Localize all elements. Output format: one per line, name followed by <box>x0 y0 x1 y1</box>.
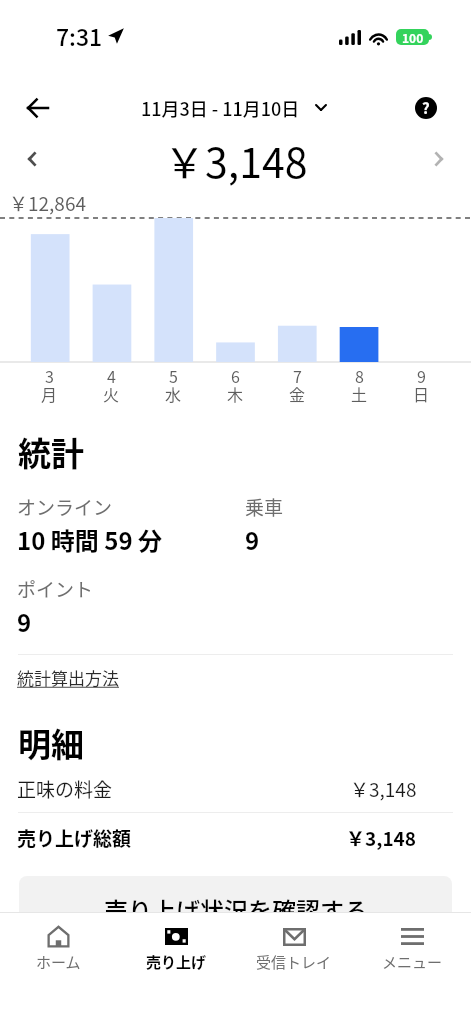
button[interactable]: Next week <box>419 139 459 179</box>
staticText: 7 <box>293 364 302 387</box>
staticText: 火 <box>103 382 120 405</box>
button[interactable]: Previous week <box>12 139 52 179</box>
staticText: ￥12,864 <box>9 189 87 217</box>
staticText: 9 <box>17 604 32 639</box>
staticText: 7:31 <box>56 19 103 52</box>
staticText: オンライン <box>17 493 113 521</box>
button[interactable]: 売り上げ状況を確認する <box>19 876 452 912</box>
staticText: 金 <box>289 382 306 405</box>
staticText: 月 <box>41 382 58 405</box>
staticText: 正味の料金 <box>17 775 113 803</box>
staticText: 統計 <box>18 428 84 476</box>
button[interactable]: メニュー <box>353 913 471 971</box>
staticText: ￥3,148 <box>346 824 417 852</box>
staticText: 乗車 <box>245 493 284 521</box>
staticText: 9 <box>245 522 260 557</box>
staticText: ￥3,148 <box>350 775 417 803</box>
staticText: ホーム <box>36 951 81 971</box>
button[interactable]: ホーム <box>0 913 117 971</box>
staticText: 受信トレイ <box>256 951 332 971</box>
staticText: 8 <box>355 364 364 387</box>
staticText: ポイント <box>17 575 94 603</box>
staticText: ￥3,148 <box>164 130 308 186</box>
button[interactable]: Back <box>14 85 60 131</box>
staticText: 日 <box>413 382 430 405</box>
staticText: 4 <box>107 364 116 387</box>
button[interactable]: 売り上げ <box>117 913 235 971</box>
staticText: 3 <box>45 364 54 387</box>
button[interactable]: 統計算出方法 <box>17 665 119 690</box>
button[interactable]: 11月3日 - 11月10日 <box>135 89 333 127</box>
staticText: 9 <box>417 364 426 387</box>
staticText: ? <box>422 97 430 119</box>
staticText: 5 <box>169 364 178 387</box>
staticText: 売り上げ総額 <box>17 824 132 852</box>
button[interactable]: Help <box>404 86 448 130</box>
staticText: 売り上げ状況を確認する <box>104 892 368 912</box>
button[interactable]: 受信トレイ <box>235 913 353 971</box>
staticText: 10 時間 59 分 <box>17 522 162 557</box>
staticText: メニュー <box>382 951 443 971</box>
staticText: 100 <box>402 29 424 45</box>
staticText: 売り上げ <box>146 951 207 971</box>
staticText: 土 <box>351 382 368 405</box>
staticText: 明細 <box>18 719 84 767</box>
staticText: 水 <box>165 382 182 405</box>
staticText: 11月3日 - 11月10日 <box>141 95 300 121</box>
staticText: 木 <box>227 382 244 405</box>
staticText: 6 <box>231 364 240 387</box>
